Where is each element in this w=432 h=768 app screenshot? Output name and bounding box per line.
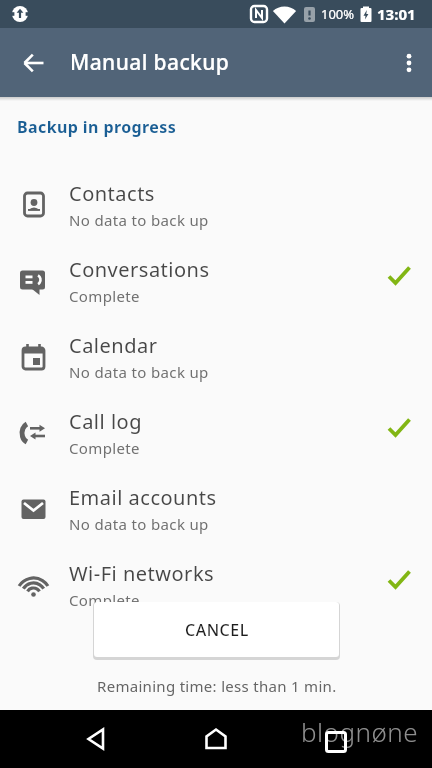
staticText: Complete (69, 438, 140, 458)
staticText: Wi-Fi networks (69, 560, 215, 587)
button[interactable]: Calendar (0, 319, 432, 395)
staticText: 13:01 (377, 4, 416, 24)
staticText: Remaining time: less than 1 min. (97, 676, 337, 696)
staticText: Complete (69, 590, 140, 610)
staticText: No data to back up (69, 362, 209, 382)
staticText: Call log (69, 408, 142, 435)
button[interactable] (73, 715, 121, 763)
button[interactable] (192, 715, 240, 763)
button[interactable] (312, 718, 360, 766)
staticText: 100% (321, 5, 355, 23)
button[interactable] (10, 39, 58, 87)
staticText: Contacts (69, 180, 155, 207)
button[interactable]: Call log (0, 395, 432, 471)
button[interactable]: Email accounts (0, 471, 432, 547)
staticText: No data to back up (69, 514, 209, 534)
button[interactable]: Wi-Fi networks (0, 547, 432, 623)
button[interactable]: Conversations (0, 243, 432, 319)
staticText: Email accounts (69, 484, 217, 511)
button[interactable] (386, 40, 432, 86)
staticText: Backup in progress (17, 116, 177, 138)
staticText: Complete (69, 286, 140, 306)
staticText: Manual backup (70, 48, 230, 77)
staticText: Calendar (69, 332, 158, 359)
staticText: CANCEL (185, 619, 249, 641)
button[interactable]: CANCEL (94, 602, 339, 657)
staticText: No data to back up (69, 210, 209, 230)
button[interactable]: Contacts (0, 167, 432, 243)
staticText: Conversations (69, 256, 210, 283)
staticText: blognøne (301, 714, 419, 749)
